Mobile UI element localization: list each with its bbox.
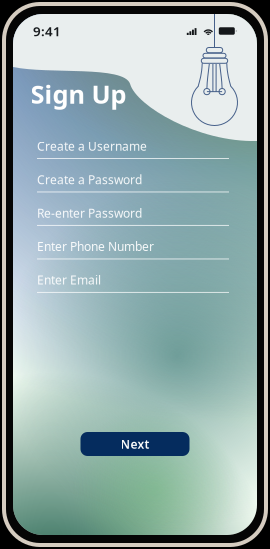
staticText: Next	[120, 436, 149, 452]
staticText: Sign Up	[30, 77, 126, 111]
staticText: Enter Email	[37, 272, 101, 288]
staticText: 9:41	[33, 22, 61, 40]
button[interactable]: Next	[80, 432, 189, 456]
staticText: Enter Phone Number	[37, 238, 154, 254]
staticText: Create a Username	[37, 138, 147, 154]
staticText: Create a Password	[37, 171, 142, 187]
staticText: Re-enter Password	[37, 205, 142, 221]
